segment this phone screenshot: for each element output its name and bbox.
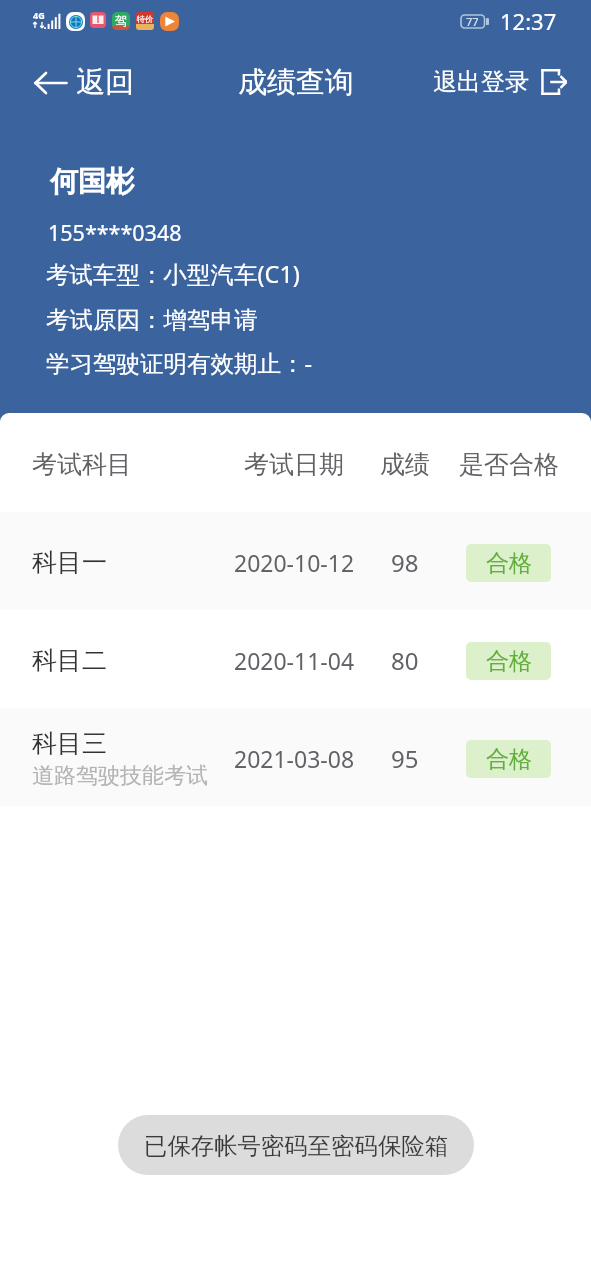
staticText: 98 (391, 546, 419, 579)
button[interactable]: 合格 (466, 544, 551, 582)
staticText: 2020-11-04 (234, 645, 355, 676)
staticText: 考试日期 (244, 449, 344, 480)
staticText: 4G (33, 9, 45, 21)
staticText: 科目一 (32, 547, 107, 578)
other: 退出登录 (540, 69, 568, 95)
staticText: 驾 (115, 13, 127, 28)
staticText: 是否合格 (459, 449, 559, 480)
button[interactable]: 退出登录 (419, 57, 591, 107)
staticText: 特价 (137, 14, 153, 24)
button[interactable]: 科目三 (0, 708, 591, 806)
staticText: 已保存帐号密码至密码保险箱 (144, 1131, 449, 1160)
staticText: 道路驾驶技能考试 (32, 762, 208, 790)
staticText: 2021-03-08 (234, 743, 355, 774)
staticText: 退出登录 (433, 67, 529, 97)
staticText: 成绩查询 (238, 64, 354, 101)
staticText: 考试原因：增驾申请 (46, 305, 258, 335)
staticText: 合格 (486, 647, 532, 676)
staticText: 何国彬 (50, 164, 134, 199)
staticText: 成绩 (380, 449, 430, 480)
staticText: 考试科目 (32, 449, 132, 480)
staticText: 科目二 (32, 645, 107, 676)
button[interactable]: 科目一 (0, 512, 591, 610)
staticText: 95 (391, 742, 419, 775)
staticText: 学习驾驶证明有效期止：- (46, 347, 313, 379)
staticText: 12:37 (500, 6, 557, 36)
button[interactable]: 合格 (466, 642, 551, 680)
button[interactable]: 合格 (466, 740, 551, 778)
staticText: 2020-10-12 (234, 547, 355, 578)
staticText: 科目三 (32, 728, 107, 759)
staticText: 80 (391, 644, 419, 677)
staticText: 155****0348 (48, 218, 182, 247)
staticText: 考试车型：小型汽车(C1) (46, 258, 300, 290)
button[interactable]: 科目二 (0, 610, 591, 708)
staticText: 返回 (76, 64, 134, 101)
button[interactable]: 返回 (0, 54, 150, 111)
staticText: 合格 (486, 745, 532, 774)
staticText: 合格 (486, 549, 532, 578)
staticText: 77 (466, 14, 479, 29)
